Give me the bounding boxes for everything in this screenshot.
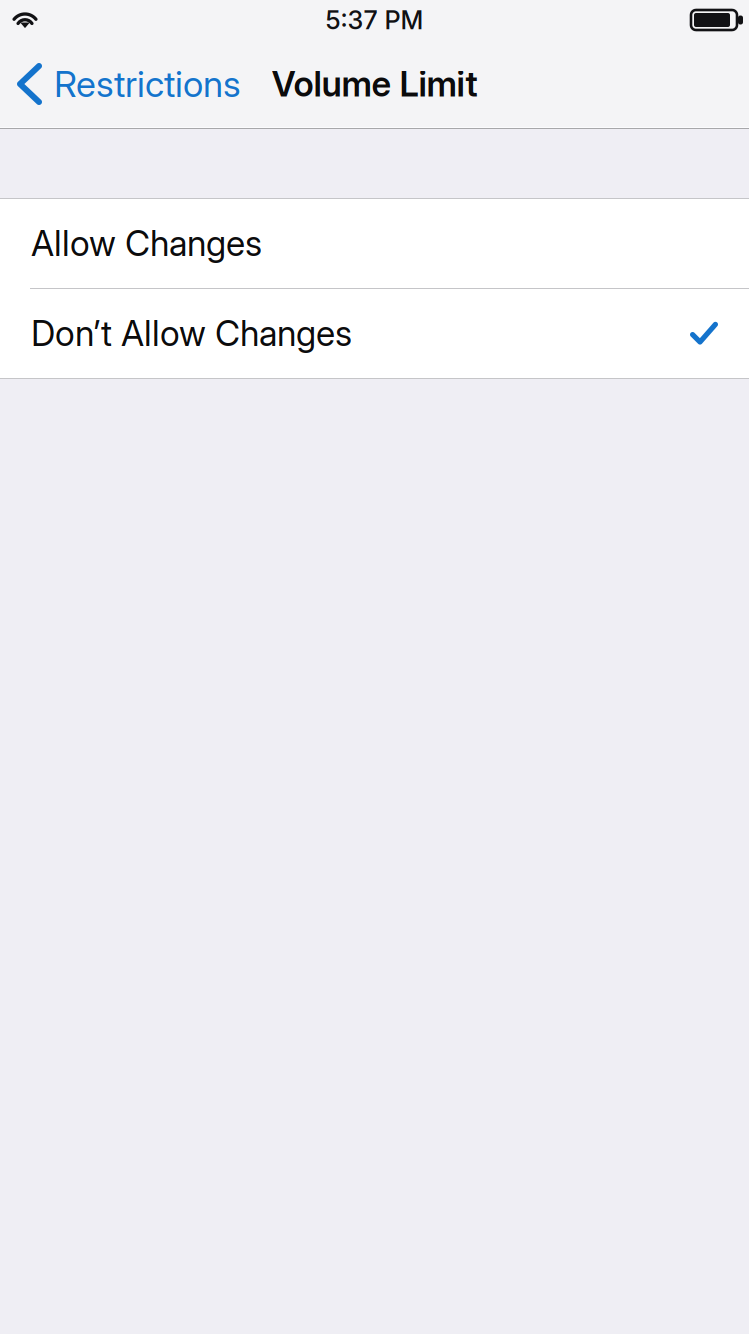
staticText: Don’t Allow Changes <box>31 312 352 354</box>
staticText: Volume Limit <box>271 63 477 105</box>
button[interactable]: Don’t Allow Changes <box>0 289 749 378</box>
button[interactable]: Allow Changes <box>0 199 749 288</box>
staticText: Allow Changes <box>31 222 262 264</box>
staticText: 5:37 PM <box>325 5 423 35</box>
staticText: Restrictions <box>54 62 241 106</box>
button[interactable]: Restrictions <box>0 40 749 127</box>
